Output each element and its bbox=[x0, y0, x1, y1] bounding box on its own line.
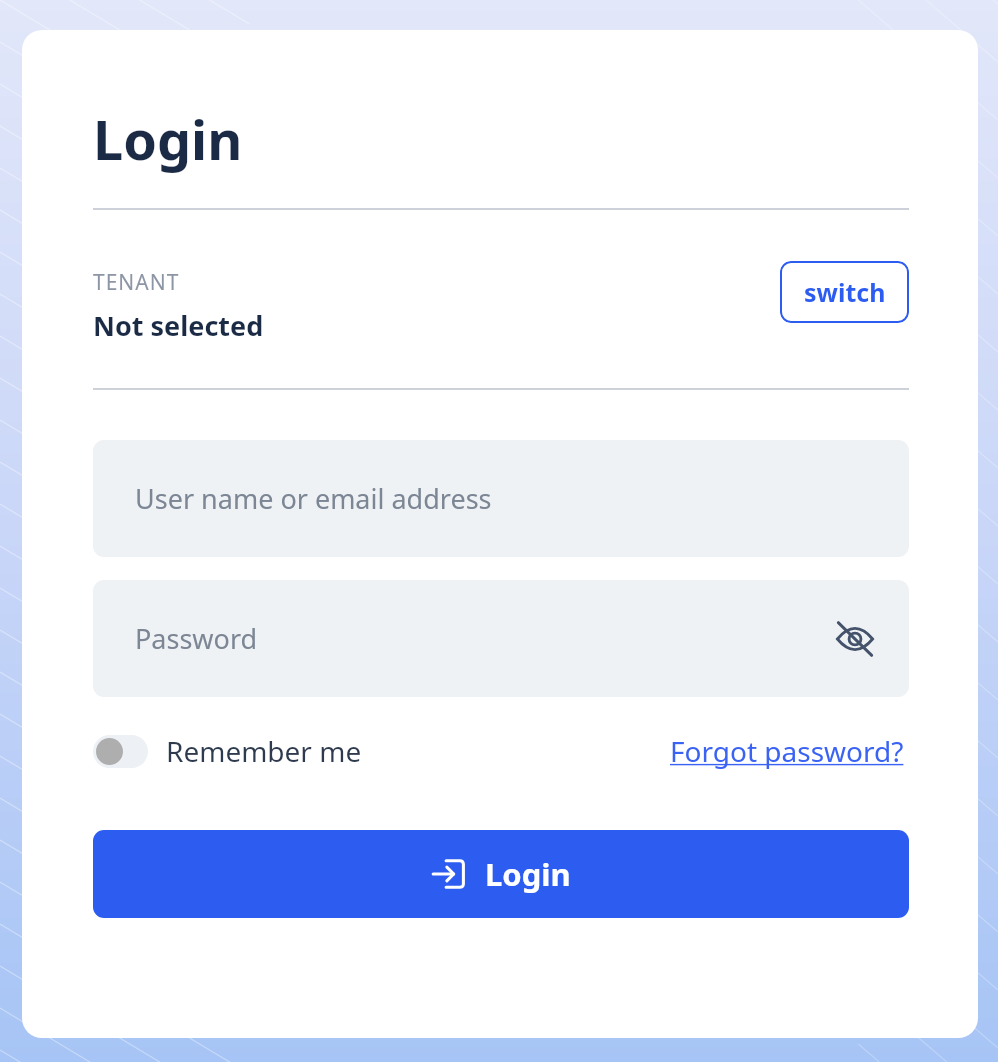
staticText: Forgot password? bbox=[670, 732, 904, 770]
button[interactable]: Login bbox=[93, 830, 909, 918]
staticText: User name or email address bbox=[135, 480, 492, 517]
staticText: Remember me bbox=[166, 732, 362, 770]
button[interactable]: Show password bbox=[827, 611, 883, 667]
button[interactable]: User name or email address bbox=[93, 440, 909, 557]
other: Login bbox=[431, 856, 467, 892]
staticText: Login bbox=[93, 102, 243, 176]
staticText: TENANT bbox=[93, 268, 180, 297]
staticText: Login bbox=[485, 853, 571, 895]
staticText: Not selected bbox=[93, 307, 264, 344]
button[interactable]: Forgot password? bbox=[670, 725, 904, 777]
button[interactable]: Password bbox=[93, 580, 909, 697]
staticText: Password bbox=[135, 620, 258, 657]
staticText: switch bbox=[804, 275, 886, 309]
button[interactable]: Remember me bbox=[93, 725, 362, 777]
button[interactable]: switch bbox=[780, 261, 909, 323]
